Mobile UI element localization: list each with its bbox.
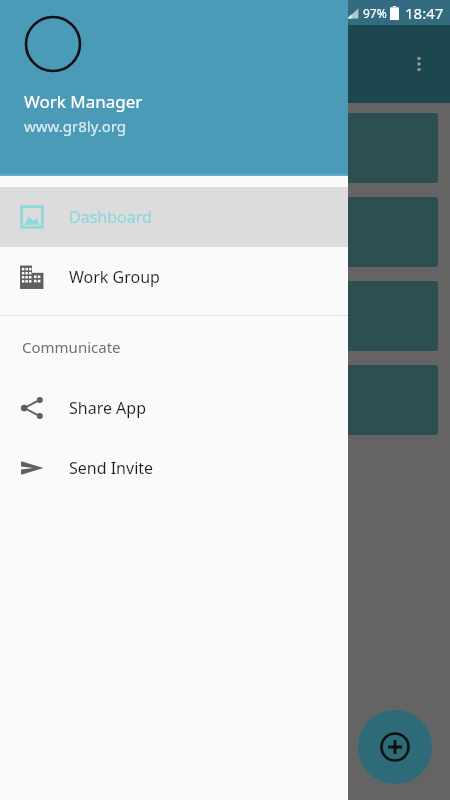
staticText: www.gr8ly.org bbox=[24, 116, 127, 136]
button[interactable]: Add bbox=[358, 710, 432, 784]
button[interactable] bbox=[12, 197, 438, 267]
button[interactable]: Dashboard bbox=[0, 187, 348, 247]
staticText: Share App bbox=[69, 397, 147, 419]
staticText: Work Group bbox=[69, 266, 160, 288]
button[interactable] bbox=[12, 113, 438, 183]
button[interactable]: Send Invite bbox=[0, 438, 348, 498]
staticText: Communicate bbox=[22, 337, 121, 357]
staticText: 18:47 bbox=[405, 3, 444, 23]
button[interactable]: More options bbox=[402, 47, 436, 81]
button[interactable]: Share App bbox=[0, 378, 348, 438]
staticText: Dashboard bbox=[69, 206, 152, 228]
button[interactable]: Work Group bbox=[0, 247, 348, 307]
button[interactable] bbox=[12, 281, 438, 351]
staticText: Work Manager bbox=[24, 90, 143, 113]
staticText: Send Invite bbox=[69, 457, 154, 479]
staticText: 97% bbox=[363, 5, 387, 21]
button[interactable]: Work Manager bbox=[0, 0, 348, 176]
button[interactable] bbox=[12, 365, 438, 435]
